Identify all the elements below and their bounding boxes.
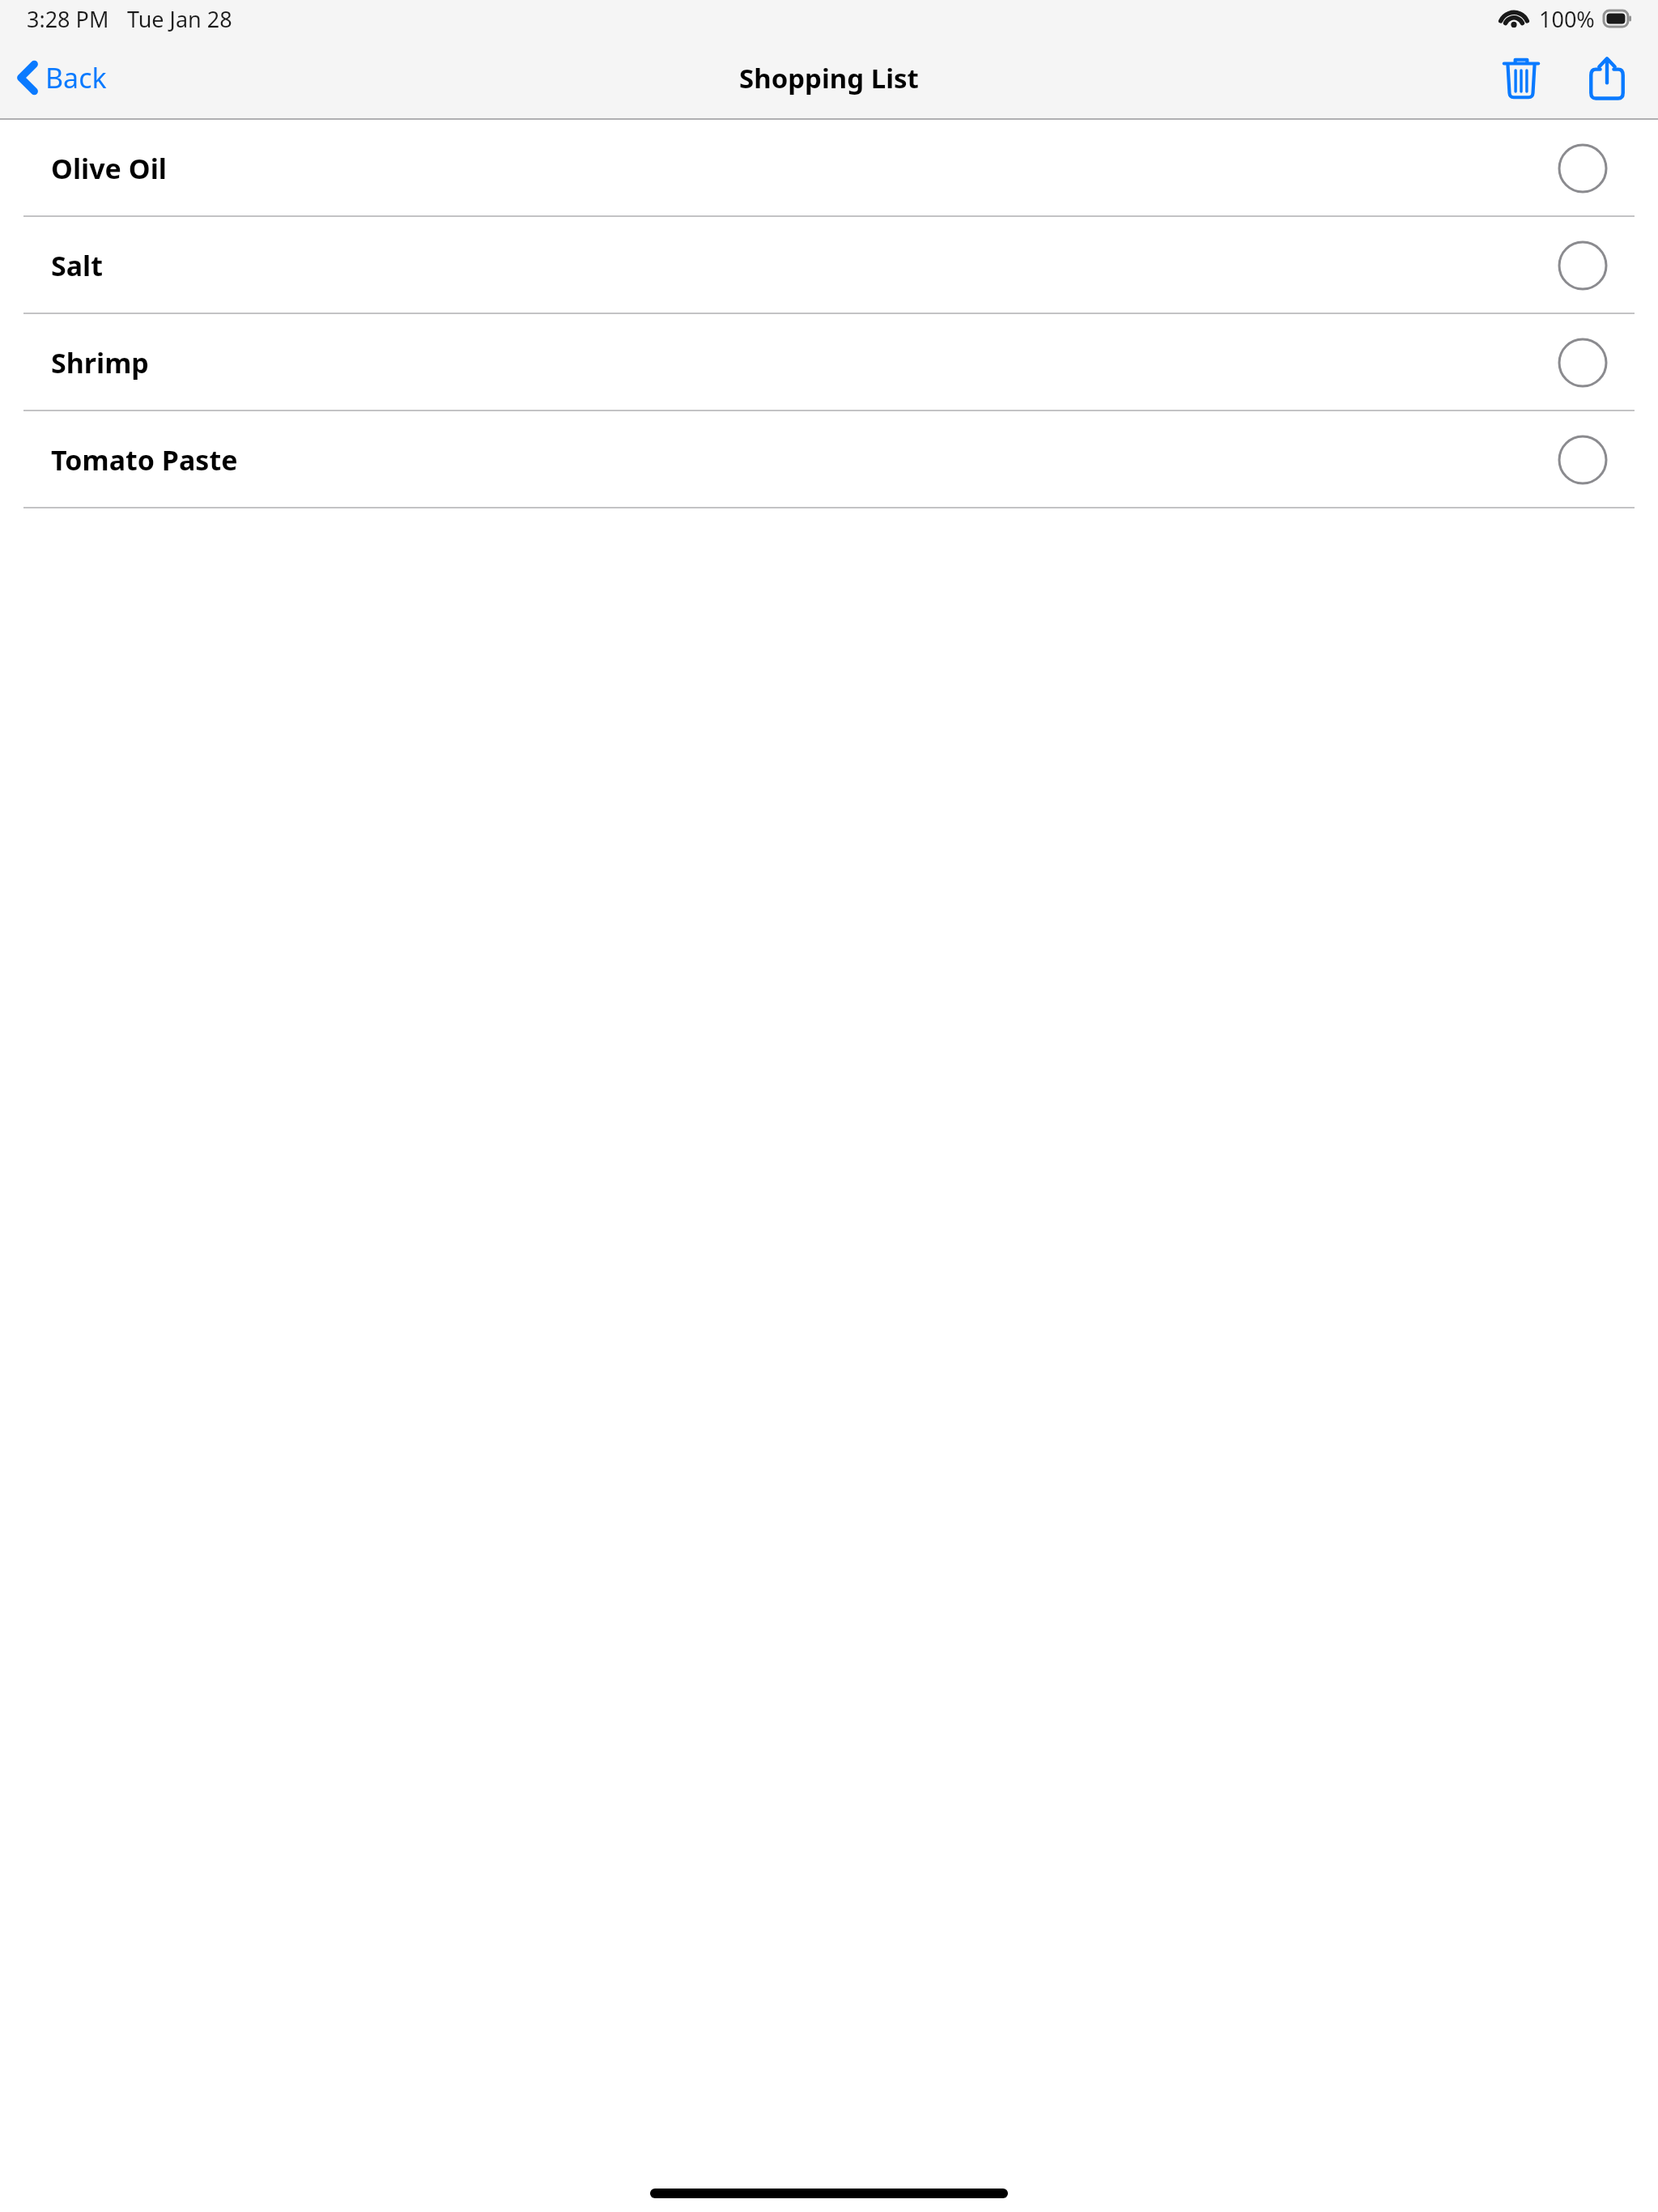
staticText: Olive Oil — [51, 150, 167, 187]
button[interactable]: Toggle Tomato Paste — [1558, 435, 1608, 485]
button[interactable]: Toggle Olive Oil — [1558, 143, 1608, 194]
staticText: Tue Jan 28 — [127, 4, 232, 34]
button[interactable]: Back — [0, 48, 121, 108]
staticText: 3:28 PM — [27, 4, 109, 34]
button[interactable]: Delete list — [1487, 44, 1555, 112]
button[interactable]: Olive Oil — [0, 120, 1658, 217]
staticText: Back — [45, 59, 107, 96]
staticText: Tomato Paste — [51, 441, 238, 479]
button[interactable]: Toggle Shrimp — [1558, 338, 1608, 388]
button[interactable]: Salt — [0, 217, 1658, 314]
staticText: Shopping List — [739, 60, 919, 96]
staticText: Salt — [51, 247, 103, 284]
staticText: Shrimp — [51, 344, 149, 381]
staticText: 100% — [1539, 4, 1595, 34]
button[interactable]: Share list — [1573, 44, 1641, 112]
button[interactable]: Toggle Salt — [1558, 240, 1608, 291]
button[interactable]: Shrimp — [0, 314, 1658, 411]
button[interactable]: Tomato Paste — [0, 411, 1658, 508]
